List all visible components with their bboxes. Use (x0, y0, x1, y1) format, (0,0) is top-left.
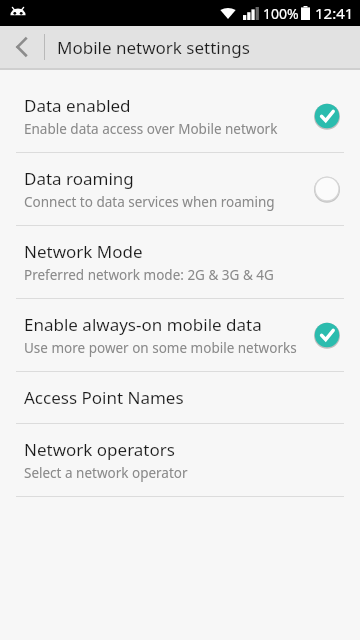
button[interactable]: Disabled (310, 172, 344, 206)
staticText: Data enabled (24, 94, 131, 117)
staticText: 12:41 (315, 3, 354, 23)
button[interactable]: Data enabled (0, 80, 360, 152)
staticText: Enable always-on mobile data (24, 313, 262, 336)
button[interactable]: Back (0, 26, 44, 68)
staticText: 100% (263, 4, 299, 23)
staticText: Mobile network settings (57, 36, 250, 59)
staticText: Network Mode (24, 240, 143, 263)
button[interactable]: Network operators (0, 424, 360, 496)
staticText: Access Point Names (24, 386, 184, 409)
button[interactable]: Enable always-on mobile data (0, 299, 360, 371)
button[interactable]: Network Mode (0, 226, 360, 298)
staticText: Preferred network mode: 2G & 3G & 4G (24, 266, 274, 284)
staticText: Data roaming (24, 167, 134, 190)
button[interactable]: Access Point Names (0, 372, 360, 423)
button[interactable]: Enabled (310, 99, 344, 133)
staticText: Select a network operator (24, 464, 188, 482)
staticText: Network operators (24, 438, 175, 461)
button[interactable]: Data roaming (0, 153, 360, 225)
staticText: Enable data access over Mobile network (24, 120, 278, 138)
staticText: Connect to data services when roaming (24, 193, 275, 211)
staticText: Use more power on some mobile networks (24, 339, 297, 357)
button[interactable]: Enabled (310, 318, 344, 352)
